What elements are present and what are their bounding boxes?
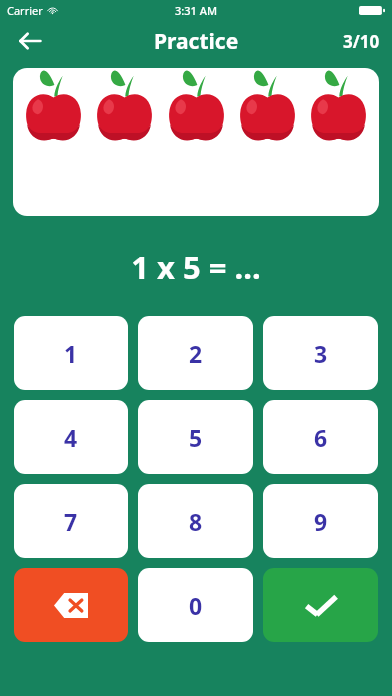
button[interactable]: 1 (14, 316, 128, 390)
staticText: 9 (314, 506, 328, 537)
staticText: 1 (64, 338, 78, 369)
button[interactable]: 4 (14, 400, 128, 474)
staticText: Practice (154, 27, 239, 56)
staticText: 3 (314, 338, 328, 369)
staticText: 6 (314, 422, 328, 453)
staticText: 7 (64, 506, 78, 537)
staticText: 8 (189, 506, 203, 537)
staticText: 5 (189, 422, 203, 453)
button[interactable]: 3 (263, 316, 378, 390)
button[interactable]: 5 (138, 400, 253, 474)
button[interactable]: Submit (263, 568, 378, 642)
button[interactable]: Back (8, 20, 52, 62)
button[interactable]: 9 (263, 484, 378, 558)
staticText: Carrier (7, 3, 43, 18)
button[interactable]: 6 (263, 400, 378, 474)
staticText: 3/10 (343, 30, 380, 53)
button[interactable]: Delete (14, 568, 128, 642)
staticText: 2 (189, 338, 203, 369)
staticText: 4 (64, 422, 78, 453)
staticText: 0 (189, 590, 203, 621)
staticText: 3:31 AM (175, 3, 218, 18)
button[interactable]: 2 (138, 316, 253, 390)
staticText: 1 x 5 = ... (0, 246, 392, 288)
button[interactable]: 0 (138, 568, 253, 642)
button[interactable]: 7 (14, 484, 128, 558)
button[interactable]: 8 (138, 484, 253, 558)
